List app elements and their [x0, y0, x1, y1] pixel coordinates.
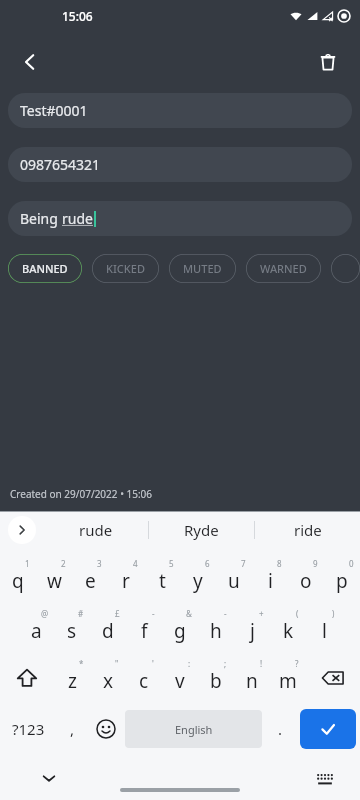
staticText: WARNED — [260, 261, 307, 276]
staticText: 9 — [313, 558, 318, 569]
button[interactable]: BANNED — [8, 254, 82, 283]
button[interactable]: w — [36, 553, 72, 603]
button[interactable]: rude — [44, 511, 148, 549]
button[interactable]: Delete — [306, 40, 350, 84]
staticText: BANNED — [22, 261, 68, 276]
button[interactable]: ride — [255, 511, 360, 549]
staticText: 5 — [169, 558, 174, 569]
button[interactable]: d — [90, 603, 126, 653]
button[interactable]: n — [234, 653, 270, 703]
button[interactable]: h — [198, 603, 234, 653]
staticText: q — [12, 568, 24, 594]
staticText: KICKED — [106, 261, 145, 276]
staticText: j — [250, 618, 255, 644]
staticText: ( — [296, 608, 299, 619]
staticText: u — [228, 568, 240, 594]
button[interactable]: Test#0001 — [8, 93, 352, 128]
staticText: ?123 — [12, 719, 45, 739]
staticText: rude — [62, 209, 93, 228]
button[interactable]: WARNED — [246, 254, 321, 283]
staticText: g — [174, 618, 186, 644]
button[interactable]: m — [270, 653, 306, 703]
staticText: t — [159, 568, 166, 594]
staticText: b — [210, 668, 222, 694]
staticText: £ — [115, 608, 120, 619]
button[interactable]: Period — [264, 703, 296, 755]
button[interactable]: Emoji — [88, 703, 123, 755]
staticText: ? — [295, 658, 299, 669]
button[interactable]: English — [125, 710, 262, 748]
staticText: i — [268, 568, 273, 594]
button[interactable]: v — [162, 653, 198, 703]
staticText: 6 — [205, 558, 210, 569]
staticText: , — [70, 719, 75, 739]
staticText: m — [279, 668, 297, 694]
button[interactable]: Backspace — [306, 653, 360, 703]
button[interactable]: e — [72, 553, 108, 603]
button[interactable]: a — [18, 603, 54, 653]
button[interactable]: DEMOTED — [331, 254, 360, 283]
staticText: ) — [332, 608, 335, 619]
staticText: : — [188, 658, 191, 669]
staticText: s — [67, 618, 77, 644]
staticText: 15:06 — [62, 8, 93, 24]
button[interactable]: Expand suggestions — [8, 516, 36, 544]
staticText: c — [139, 668, 149, 694]
button[interactable]: Change keyboard — [308, 761, 342, 795]
button[interactable]: KICKED — [92, 254, 159, 283]
staticText: h — [210, 618, 222, 644]
button[interactable]: p — [324, 553, 360, 603]
staticText: l — [322, 618, 327, 644]
button[interactable]: Comma — [56, 703, 88, 755]
staticText: DEMOTED — [345, 254, 346, 283]
button[interactable]: x — [90, 653, 126, 703]
button[interactable]: MUTED — [169, 254, 236, 283]
button[interactable]: c — [126, 653, 162, 703]
staticText: z — [68, 668, 77, 694]
button[interactable]: Being — [8, 201, 352, 236]
button[interactable]: f — [126, 603, 162, 653]
staticText: n — [246, 668, 258, 694]
staticText: . — [278, 719, 283, 739]
button[interactable]: Back — [8, 40, 52, 84]
button[interactable]: g — [162, 603, 198, 653]
staticText: ride — [294, 520, 322, 540]
button[interactable]: o — [288, 553, 324, 603]
staticText: Being — [20, 209, 62, 228]
staticText: " — [115, 658, 119, 669]
button[interactable]: q — [0, 553, 36, 603]
button[interactable]: ?123 — [0, 703, 56, 755]
button[interactable]: Hide keyboard — [32, 761, 66, 795]
staticText: Ryde — [184, 520, 219, 540]
button[interactable]: i — [252, 553, 288, 603]
staticText: 2 — [61, 558, 66, 569]
staticText: w — [47, 568, 62, 594]
button[interactable]: t — [144, 553, 180, 603]
staticText: 3 — [97, 558, 102, 569]
staticText: v — [175, 668, 185, 694]
button[interactable]: k — [270, 603, 306, 653]
staticText: - — [224, 608, 227, 619]
button[interactable]: u — [216, 553, 252, 603]
staticText: ' — [152, 658, 154, 669]
button[interactable]: y — [180, 553, 216, 603]
staticText: x — [103, 668, 114, 694]
button[interactable]: z — [54, 653, 90, 703]
button[interactable]: b — [198, 653, 234, 703]
staticText: # — [78, 608, 84, 619]
staticText: 0 — [349, 558, 354, 569]
button[interactable]: s — [54, 603, 90, 653]
button[interactable]: Ryde — [149, 511, 254, 549]
staticText: k — [283, 618, 294, 644]
staticText: * — [79, 658, 84, 669]
staticText: 8 — [277, 558, 282, 569]
button[interactable]: 0987654321 — [8, 147, 352, 182]
button[interactable]: l — [306, 603, 342, 653]
button[interactable]: r — [108, 553, 144, 603]
staticText: ; — [224, 658, 227, 669]
button[interactable]: j — [234, 603, 270, 653]
staticText: @ — [41, 608, 49, 619]
button[interactable]: Shift — [0, 653, 54, 703]
button[interactable]: Done — [300, 709, 356, 749]
staticText: p — [336, 568, 348, 594]
